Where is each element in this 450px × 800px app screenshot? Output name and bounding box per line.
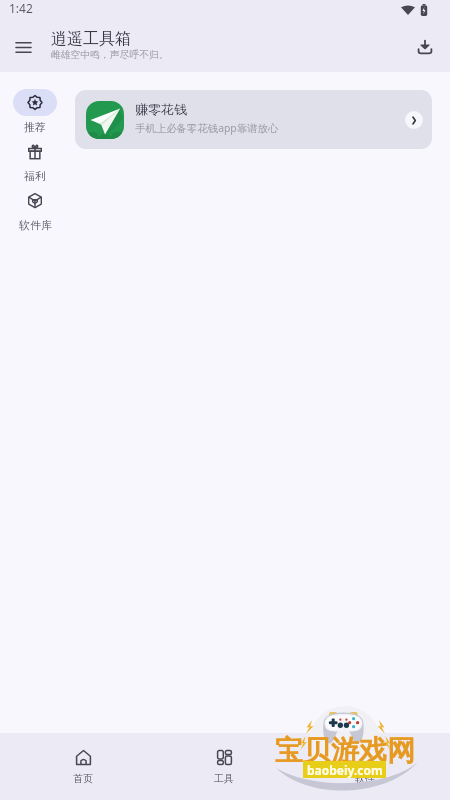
button[interactable]: 软件 — [337, 733, 393, 785]
staticText: 雌雄空中鸣，声尽呼不归。 — [51, 49, 169, 61]
button[interactable]: 首页 — [55, 733, 111, 785]
button[interactable]: 工具 — [196, 733, 252, 785]
staticText: 宝贝游戏网 — [275, 733, 415, 768]
staticText: 软件 — [355, 772, 375, 785]
button[interactable]: 赚零花钱 — [75, 90, 432, 149]
staticText: 首页 — [73, 772, 93, 785]
staticText: 手机上必备零花钱app靠谱放心 — [135, 121, 279, 135]
button[interactable]: Menu — [8, 32, 39, 63]
staticText: 工具 — [214, 772, 234, 785]
staticText: 推荐 — [24, 120, 46, 134]
button[interactable]: 福利 — [13, 138, 57, 183]
staticText: baobeiy.com — [307, 762, 383, 778]
staticText: 逍遥工具箱 — [51, 29, 131, 49]
staticText: 福利 — [24, 169, 46, 183]
button[interactable]: Download — [408, 30, 442, 64]
staticText: 赚零花钱 — [135, 101, 187, 117]
button[interactable]: 推荐 — [13, 89, 57, 134]
staticText: 1:42 — [9, 0, 33, 16]
button[interactable]: 软件库 — [13, 187, 57, 232]
staticText: 软件库 — [19, 218, 52, 232]
